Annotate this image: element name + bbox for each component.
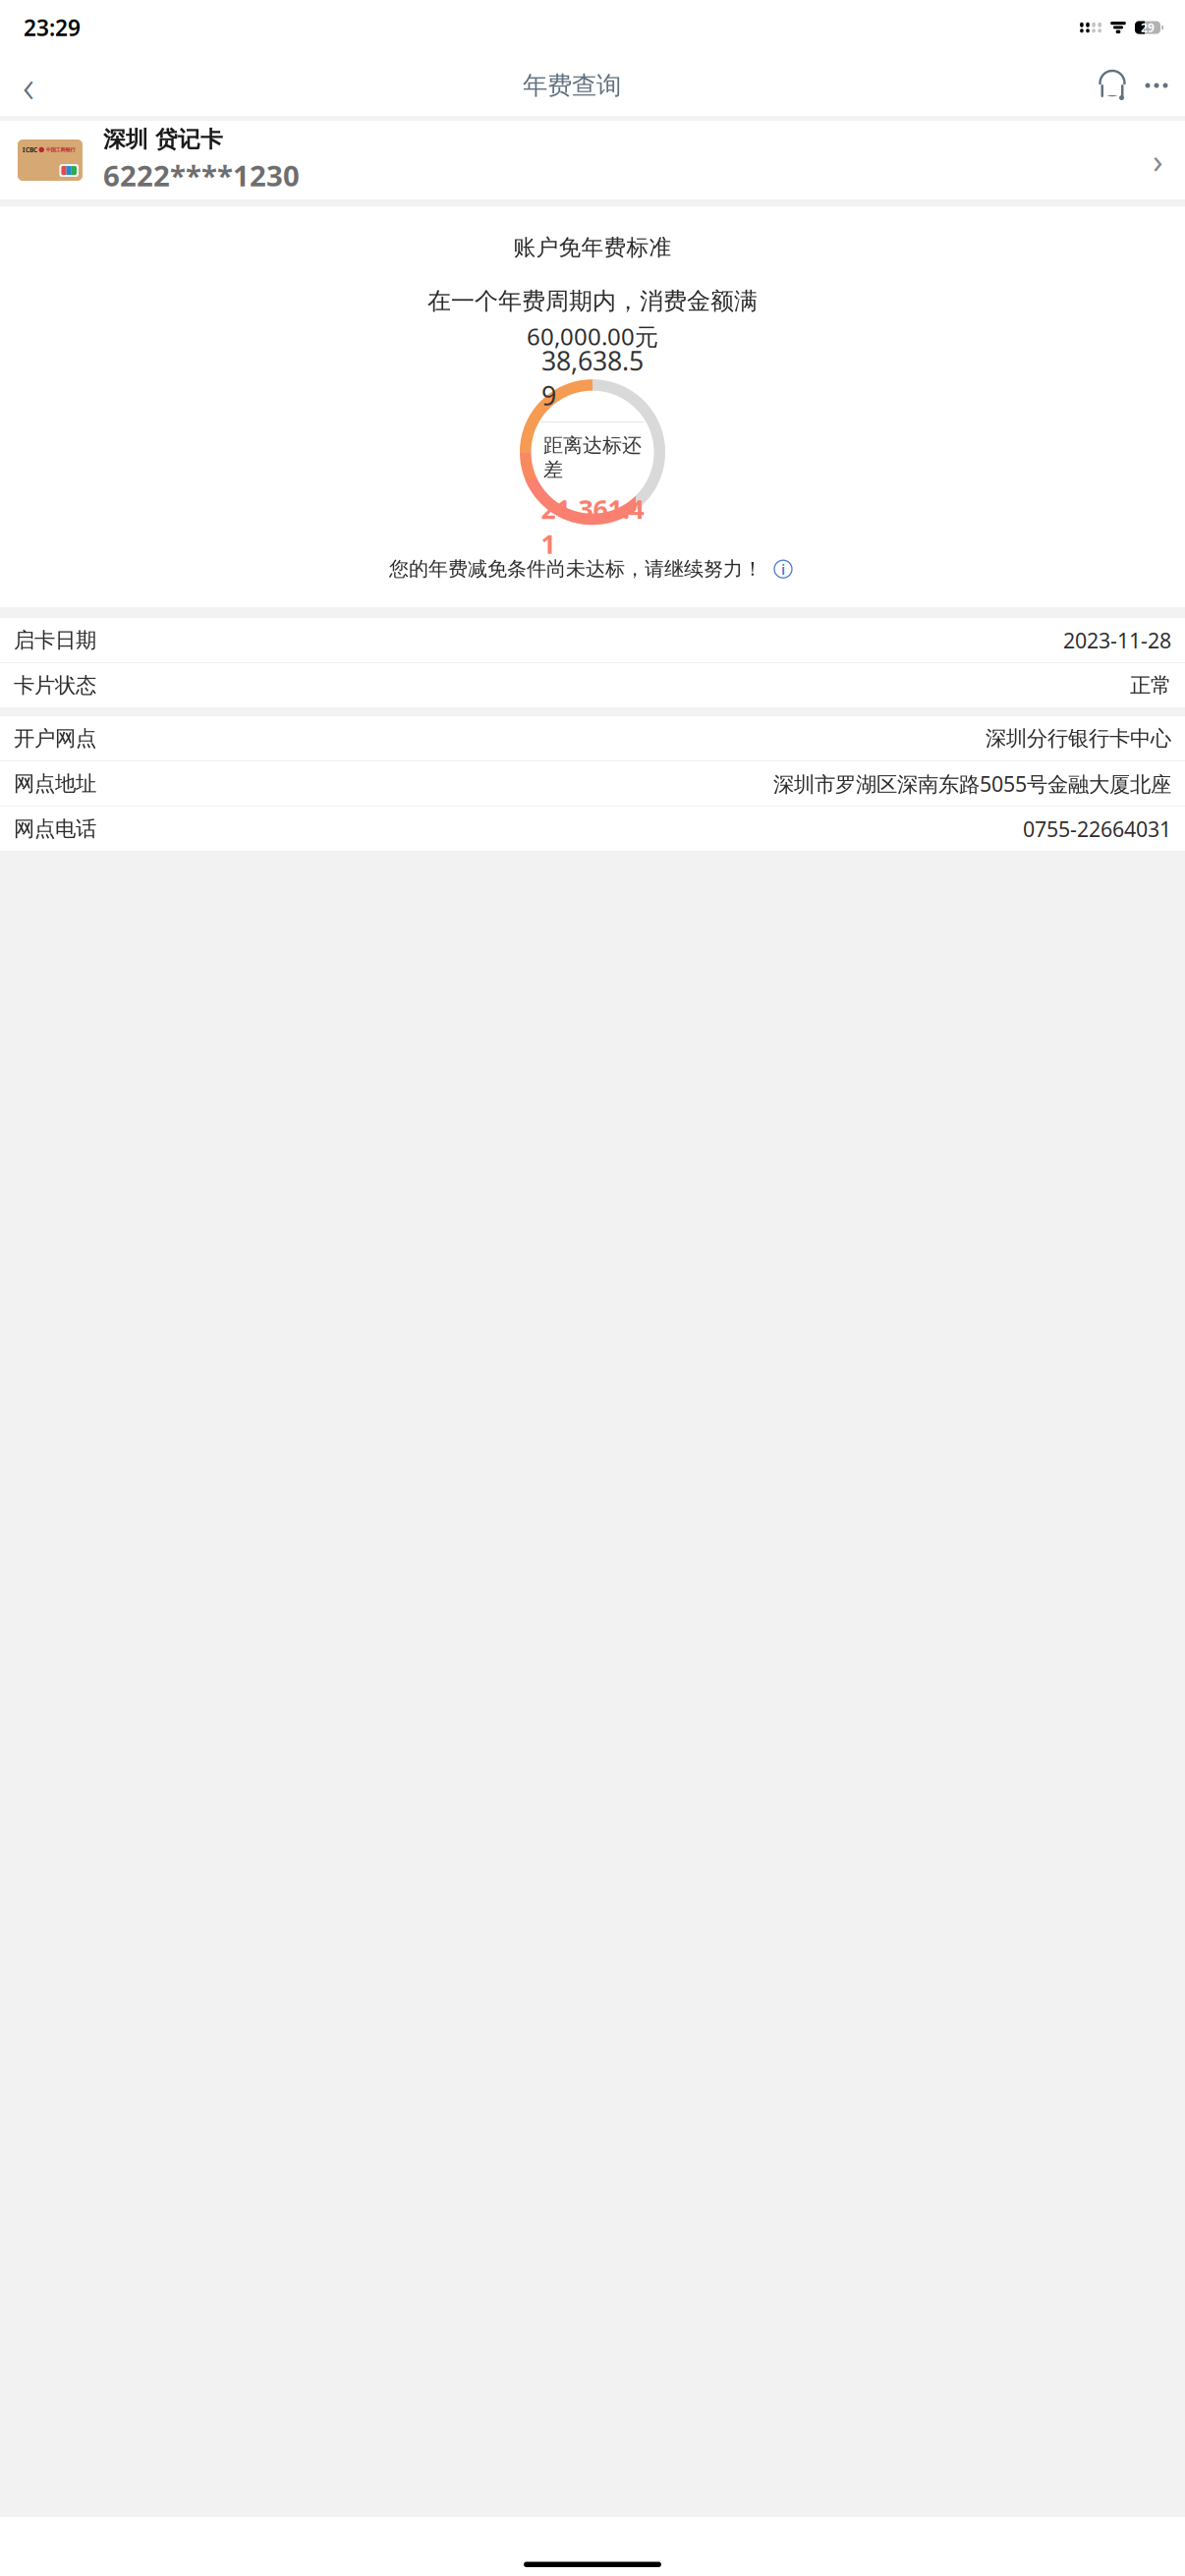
staticText: 深圳分行银行卡中心: [986, 726, 1171, 751]
staticText: ‹: [23, 56, 34, 115]
staticText: 年费查询: [523, 70, 621, 101]
button[interactable]: ICBC: [0, 121, 1185, 199]
staticText: 开户网点: [14, 726, 96, 751]
staticText: 网点地址: [14, 771, 96, 797]
staticText: 您的年费减免条件尚未达标，请继续努力！: [389, 557, 762, 581]
button[interactable]: 更多: [1134, 58, 1179, 113]
button[interactable]: 返回: [4, 58, 53, 113]
staticText: 启卡日期: [14, 627, 96, 653]
staticText: 23:29: [24, 13, 81, 42]
staticText: 29: [1141, 20, 1155, 35]
staticText: 深圳 贷记卡: [103, 126, 223, 153]
staticText: ICBC: [23, 145, 37, 154]
staticText: 网点电话: [14, 816, 96, 842]
staticText: 深圳市罗湖区深南东路5055号金融大厦北座: [773, 770, 1171, 798]
staticText: 距离达标还差: [543, 433, 642, 482]
button[interactable]: 规则说明: [770, 556, 796, 582]
staticText: 21,361.41: [541, 492, 644, 561]
staticText: 0755-22664031: [1023, 815, 1171, 843]
staticText: 60,000.00元: [527, 321, 658, 352]
staticText: 正常: [1130, 673, 1171, 698]
staticText: 卡片状态: [14, 673, 96, 698]
staticText: 2023-11-28: [1063, 626, 1171, 654]
staticText: 账户免年费标准: [513, 234, 672, 261]
staticText: 在一个年费周期内，消费金额满: [427, 287, 758, 316]
button[interactable]: 在线客服: [1091, 58, 1134, 113]
staticText: 中国工商银行: [46, 147, 75, 153]
staticText: 6222****1230: [103, 156, 300, 194]
staticText: ›: [1153, 138, 1163, 183]
staticText: 38,638.59: [541, 343, 644, 413]
staticText: i: [781, 560, 785, 579]
